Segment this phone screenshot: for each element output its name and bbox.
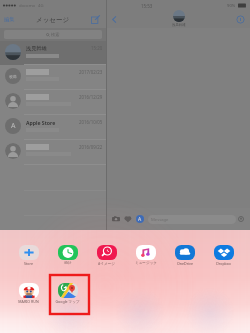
button[interactable]: 時計 (48, 245, 87, 266)
staticText: Apple Store (26, 119, 56, 126)
button[interactable]: ミュージック (126, 245, 165, 266)
button[interactable]: 2016/12/29 (0, 90, 106, 115)
button[interactable]: A (0, 115, 106, 140)
staticText: 15:53 (141, 3, 153, 9)
staticText: #イメージ (98, 261, 115, 266)
staticText: 15:20 (91, 45, 103, 51)
staticText: 2017/02/23 (79, 69, 103, 75)
staticText: 2016/09/22 (79, 144, 103, 150)
staticText: 牧満 (9, 74, 17, 79)
button[interactable]: Record audio (238, 216, 244, 222)
staticText: 90% (227, 3, 236, 9)
button[interactable]: Back (110, 15, 119, 24)
staticText: 浅見幹雄 (26, 45, 47, 52)
staticText: A (138, 216, 142, 223)
staticText: Google マップ (55, 299, 80, 304)
staticText: 時計 (64, 261, 72, 266)
staticText: 4G (38, 3, 44, 9)
staticText: ミュージック (135, 261, 157, 266)
staticText: docomo (19, 3, 36, 9)
button[interactable]: MARIO RUN (9, 283, 48, 304)
staticText: 浅見幹雄 (172, 23, 186, 27)
staticText: A (11, 121, 16, 131)
button[interactable]: App Store (136, 215, 144, 223)
button[interactable]: 牧満 (0, 65, 106, 90)
staticText: OneDrive (177, 261, 193, 266)
staticText: Dropbox (216, 261, 231, 266)
staticText: Store (24, 261, 33, 266)
button[interactable]: Google マップ (48, 283, 87, 304)
button[interactable]: OneDrive (165, 245, 204, 266)
button[interactable]: 2016/09/22 (0, 140, 106, 165)
staticText: Message (151, 217, 169, 223)
button[interactable]: Details (236, 15, 245, 24)
staticText: メッセージ (36, 16, 70, 24)
button[interactable]: #イメージ (87, 245, 126, 266)
staticText: 検索 (51, 32, 60, 37)
button[interactable]: Dropbox (204, 245, 243, 266)
button[interactable]: 浅見幹雄 (172, 10, 186, 27)
staticText: MARIO RUN (18, 299, 39, 304)
button[interactable]: Store (9, 245, 48, 266)
button[interactable]: 浅見幹雄 (0, 41, 106, 65)
button[interactable]: Digital Touch (124, 215, 132, 223)
staticText: 2016/10/05 (79, 119, 103, 125)
button[interactable]: 編集 (0, 14, 17, 25)
button[interactable]: Camera (112, 215, 120, 223)
button[interactable]: New message (91, 15, 100, 24)
staticText: 2016/12/29 (79, 94, 103, 100)
